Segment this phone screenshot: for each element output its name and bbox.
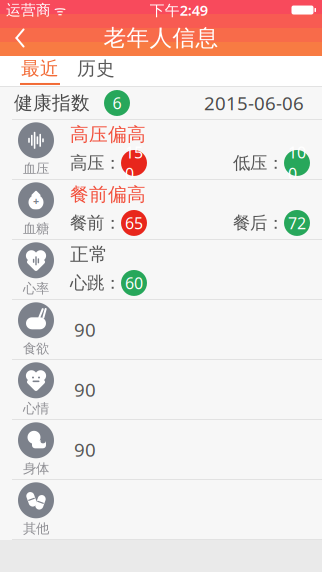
staticText: 下午2:49: [150, 0, 208, 20]
staticText: 血压: [23, 160, 49, 177]
button[interactable]: 最近: [12, 57, 68, 85]
staticText: 餐后：: [233, 212, 284, 234]
staticText: 心跳：: [70, 272, 121, 294]
staticText: 心情: [23, 400, 49, 417]
button[interactable]: 心情: [0, 360, 322, 419]
button[interactable]: 身体: [0, 420, 322, 479]
staticText: 食欲: [23, 340, 49, 357]
staticText: 150: [125, 142, 143, 184]
staticText: 100: [288, 142, 306, 184]
staticText: 最近: [21, 57, 59, 80]
staticText: +: [33, 194, 39, 208]
staticText: 65: [125, 212, 143, 233]
button[interactable]: +: [0, 180, 322, 239]
staticText: 2015-06-06: [204, 91, 304, 115]
staticText: 身体: [23, 460, 49, 477]
staticText: 72: [288, 212, 306, 233]
staticText: 历史: [77, 57, 115, 80]
button[interactable]: 血压: [0, 120, 322, 179]
staticText: 其他: [23, 520, 49, 537]
staticText: 90: [74, 377, 96, 402]
staticText: 低压：: [233, 152, 284, 174]
staticText: ᯤ: [51, 1, 66, 19]
staticText: 健康指数: [14, 91, 90, 114]
staticText: 血糖: [23, 220, 49, 237]
staticText: 正常: [70, 243, 108, 266]
staticText: 老年人信息: [103, 24, 218, 52]
staticText: 60: [125, 272, 143, 293]
staticText: 运营商: [6, 1, 51, 19]
button[interactable]: 健康指数: [0, 87, 322, 119]
button[interactable]: 返回: [0, 20, 38, 56]
staticText: 餐前：: [70, 212, 121, 234]
staticText: 心率: [23, 280, 49, 297]
staticText: 90: [74, 317, 96, 342]
staticText: 高压偏高: [70, 123, 146, 146]
staticText: 6: [112, 92, 121, 114]
button[interactable]: 心率: [0, 240, 322, 299]
button[interactable]: 其他: [0, 480, 322, 539]
staticText: 90: [74, 437, 96, 462]
button[interactable]: 食欲: [0, 300, 322, 359]
staticText: 餐前偏高: [70, 183, 146, 206]
staticText: 高压：: [70, 152, 121, 174]
button[interactable]: 历史: [68, 57, 124, 85]
